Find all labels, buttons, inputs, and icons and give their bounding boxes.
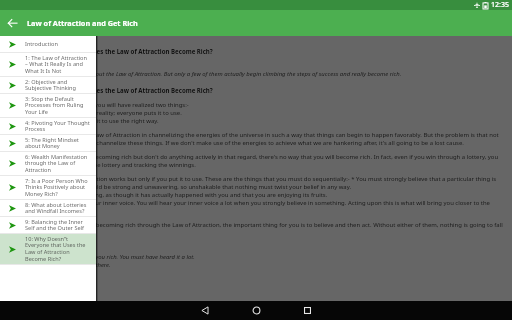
- button[interactable]: Back: [180, 301, 231, 320]
- staticText: If you are only dreaming about becoming …: [4, 153, 503, 169]
- staticText: So, when you are thinking about becoming…: [4, 221, 503, 237]
- button[interactable]: 6: Wealth Manifestation through the Law …: [0, 152, 96, 175]
- staticText: 9: Balancing the Inner Self and the Oute…: [25, 218, 91, 232]
- staticText: 3: Stop the Default Processes from Rulin…: [25, 95, 91, 116]
- staticText: Law of Attraction and Get Rich: [27, 18, 138, 28]
- staticText: 6: Wealth Manifestation through the Law …: [25, 153, 91, 174]
- staticText: Believe and act and that will make you r…: [4, 253, 195, 269]
- button[interactable]: 5: The Right Mindset about Money: [0, 135, 96, 151]
- staticText: If you have read the book so far, you wi…: [4, 101, 189, 125]
- staticText: Why Doesn”t Everyone that Uses the Law o…: [4, 86, 213, 94]
- button[interactable]: 9: Balancing the Inner Self and the Oute…: [0, 217, 96, 233]
- button[interactable]: 7: Is a Poor Person Who Thinks Positivel…: [0, 176, 96, 199]
- staticText: 5: The Right Mindset about Money: [25, 136, 91, 150]
- button[interactable]: 8: What about Lotteries and Windfall Inc…: [0, 200, 96, 216]
- staticText: 2: Objective and Subjective Thinking: [25, 78, 91, 92]
- button[interactable]: Home: [231, 301, 282, 320]
- staticText: 7: Is a Poor Person Who Thinks Positivel…: [25, 177, 91, 198]
- staticText: Remember that the Law of Attraction work…: [4, 175, 503, 215]
- button[interactable]: 3: Stop the Default Processes from Rulin…: [0, 94, 96, 117]
- button[interactable]: 2: Objective and Subjective Thinking: [0, 77, 96, 93]
- button[interactable]: 4: Pivoting Your Thought Process: [0, 118, 96, 134]
- staticText: 1: The Law of Attraction – What It Reall…: [25, 54, 91, 75]
- button[interactable]: 10: Why Doesn”t Everyone that Uses the L…: [0, 234, 96, 264]
- button[interactable]: Introduction: [0, 36, 96, 52]
- staticText: Everything lies in the use of the Law of…: [4, 131, 503, 147]
- staticText: Many people in this world know about the…: [4, 70, 402, 78]
- staticText: Introduction: [25, 40, 58, 48]
- staticText: 10: Why Doesn”t Everyone that Uses the L…: [25, 235, 91, 263]
- staticText: 12:35: [491, 0, 509, 10]
- button[interactable]: Recent apps: [282, 301, 333, 320]
- button[interactable]: Navigate up: [0, 10, 24, 36]
- button[interactable]: 1: The Law of Attraction – What It Reall…: [0, 53, 96, 76]
- staticText: 4: Pivoting Your Thought Process: [25, 119, 91, 133]
- staticText: Why Doesn”t Everyone that Uses the Law o…: [4, 47, 213, 55]
- staticText: 8: What about Lotteries and Windfall Inc…: [25, 201, 91, 215]
